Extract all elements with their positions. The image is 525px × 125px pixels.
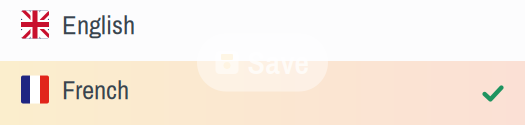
button[interactable]: English	[0, 0, 525, 61]
staticText: English	[62, 6, 135, 42]
button[interactable]: Save	[197, 33, 328, 91]
staticText: French	[62, 71, 129, 107]
staticText: Save	[247, 41, 309, 84]
button[interactable]: French	[0, 61, 525, 125]
